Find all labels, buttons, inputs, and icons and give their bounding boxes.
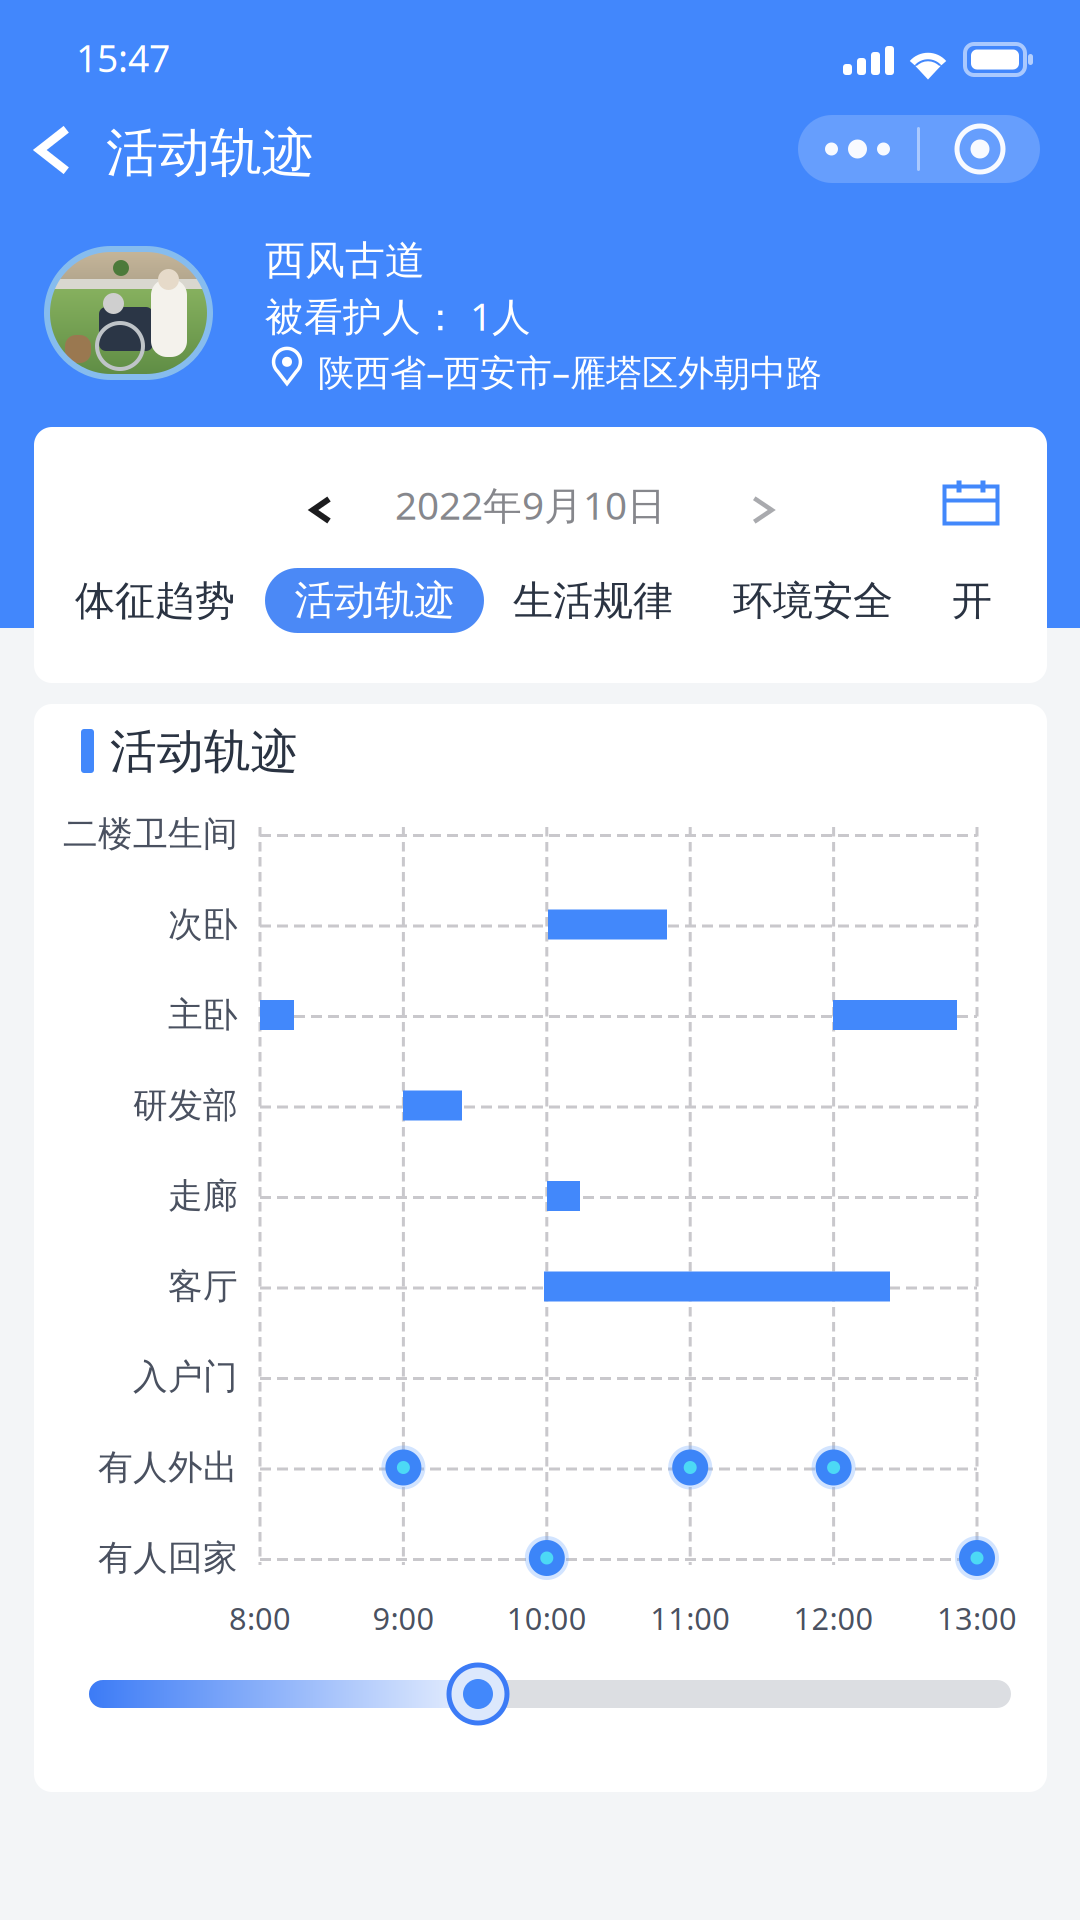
staticText: 主卧 xyxy=(168,994,238,1036)
staticText: 被看护人： 1人 xyxy=(265,290,531,341)
button[interactable]: More xyxy=(798,115,917,183)
staticText: 入户门 xyxy=(133,1356,238,1398)
button[interactable]: 环境安全 xyxy=(721,568,905,634)
staticText: 次卧 xyxy=(168,903,238,946)
staticText: 活动轨迹 xyxy=(106,121,314,185)
staticText: 活动轨迹 xyxy=(294,576,454,625)
staticText: 生活规律 xyxy=(513,576,673,625)
staticText: 8:00 xyxy=(229,1598,291,1638)
button[interactable]: 活动轨迹 xyxy=(265,568,484,633)
staticText: 开 xyxy=(952,576,992,625)
staticText: 研发部 xyxy=(133,1084,238,1127)
staticText: 12:00 xyxy=(794,1598,874,1638)
staticText: 有人外出 xyxy=(98,1446,238,1489)
button[interactable]: Previous day xyxy=(286,472,356,548)
button[interactable]: Next day xyxy=(730,472,796,548)
button[interactable]: 开 xyxy=(940,568,1004,634)
staticText: 走廊 xyxy=(168,1175,238,1217)
button[interactable]: Pick a date xyxy=(926,462,1016,542)
staticText: 10:00 xyxy=(507,1598,587,1638)
staticText: 陕西省–西安市–雁塔区外朝中路 xyxy=(318,348,822,396)
staticText: 11:00 xyxy=(650,1598,730,1638)
button[interactable]: Back xyxy=(10,106,96,194)
staticText: 15:47 xyxy=(76,33,170,83)
button[interactable]: 体征趋势 xyxy=(63,568,247,634)
button[interactable]: Close mini program xyxy=(920,115,1040,183)
staticText: 西风古道 xyxy=(265,236,425,285)
staticText: 2022年9月10日 xyxy=(395,479,666,530)
staticText: 体征趋势 xyxy=(75,576,235,625)
staticText: 环境安全 xyxy=(733,576,893,625)
staticText: 9:00 xyxy=(372,1598,434,1638)
staticText: 客厅 xyxy=(168,1265,238,1308)
staticText: 13:00 xyxy=(937,1598,1017,1638)
staticText: 二楼卫生间 xyxy=(63,813,238,855)
staticText: 活动轨迹 xyxy=(110,723,298,780)
staticText: 有人回家 xyxy=(98,1537,238,1579)
button[interactable]: 生活规律 xyxy=(501,568,685,634)
